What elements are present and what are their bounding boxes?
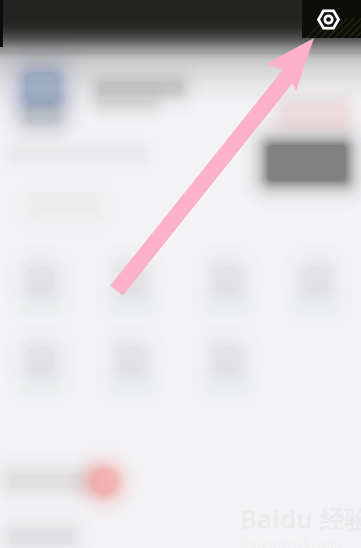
button[interactable]: Settings	[302, 0, 361, 38]
staticText: Baidu 经验	[240, 502, 361, 536]
